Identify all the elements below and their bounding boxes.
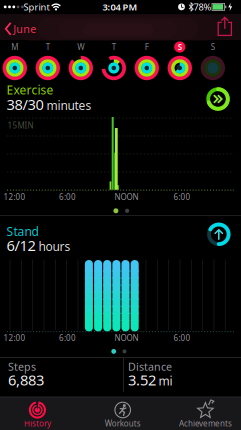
button[interactable]: S [196, 40, 229, 86]
staticText: 6:00 [173, 191, 190, 202]
staticText: Stand [6, 223, 38, 239]
button[interactable]: S [163, 40, 196, 86]
staticText: Steps [8, 359, 36, 374]
button[interactable]: T [97, 40, 130, 86]
staticText: NOON [114, 333, 138, 343]
staticText: 12:00 [3, 333, 25, 343]
staticText: History [24, 418, 51, 429]
staticText: 6,883 [8, 370, 44, 389]
staticText: 15MIN [7, 120, 33, 131]
staticText: Distance [128, 359, 172, 374]
staticText: Workouts [105, 418, 141, 429]
staticText: 38/30 [6, 94, 43, 114]
staticText: W [77, 42, 84, 52]
staticText: M [11, 42, 18, 52]
staticText: Achievements [179, 418, 232, 429]
staticText: 6:00 [173, 333, 190, 343]
button[interactable]: Back [1, 18, 41, 40]
button[interactable]: Achievements [167, 397, 241, 430]
staticText: mi [158, 373, 172, 389]
staticText: T [46, 42, 50, 52]
staticText: F [145, 42, 149, 52]
staticText: 6:00 [59, 333, 76, 343]
staticText: Sprint [23, 1, 49, 13]
button[interactable]: F [130, 40, 163, 86]
staticText: hours [38, 238, 70, 254]
staticText: 78% [193, 1, 211, 13]
button[interactable]: W [64, 40, 97, 86]
button[interactable]: M [0, 40, 31, 86]
staticText: S [178, 42, 182, 52]
button[interactable]: T [31, 40, 64, 86]
staticText: 3:04 PM [102, 1, 137, 13]
staticText: June [13, 22, 36, 36]
button[interactable]: Share [214, 15, 236, 37]
staticText: minutes [46, 97, 91, 113]
staticText: S [211, 42, 215, 52]
button[interactable]: Workouts [85, 397, 161, 430]
button[interactable]: History [0, 397, 75, 430]
staticText: 6:00 [59, 191, 76, 202]
staticText: T [112, 42, 116, 52]
staticText: 12:00 [3, 191, 25, 202]
staticText: Exercise [6, 82, 53, 98]
staticText: 3.52 [128, 370, 156, 389]
staticText: NOON [114, 191, 138, 202]
staticText: 6/12 [6, 235, 35, 255]
